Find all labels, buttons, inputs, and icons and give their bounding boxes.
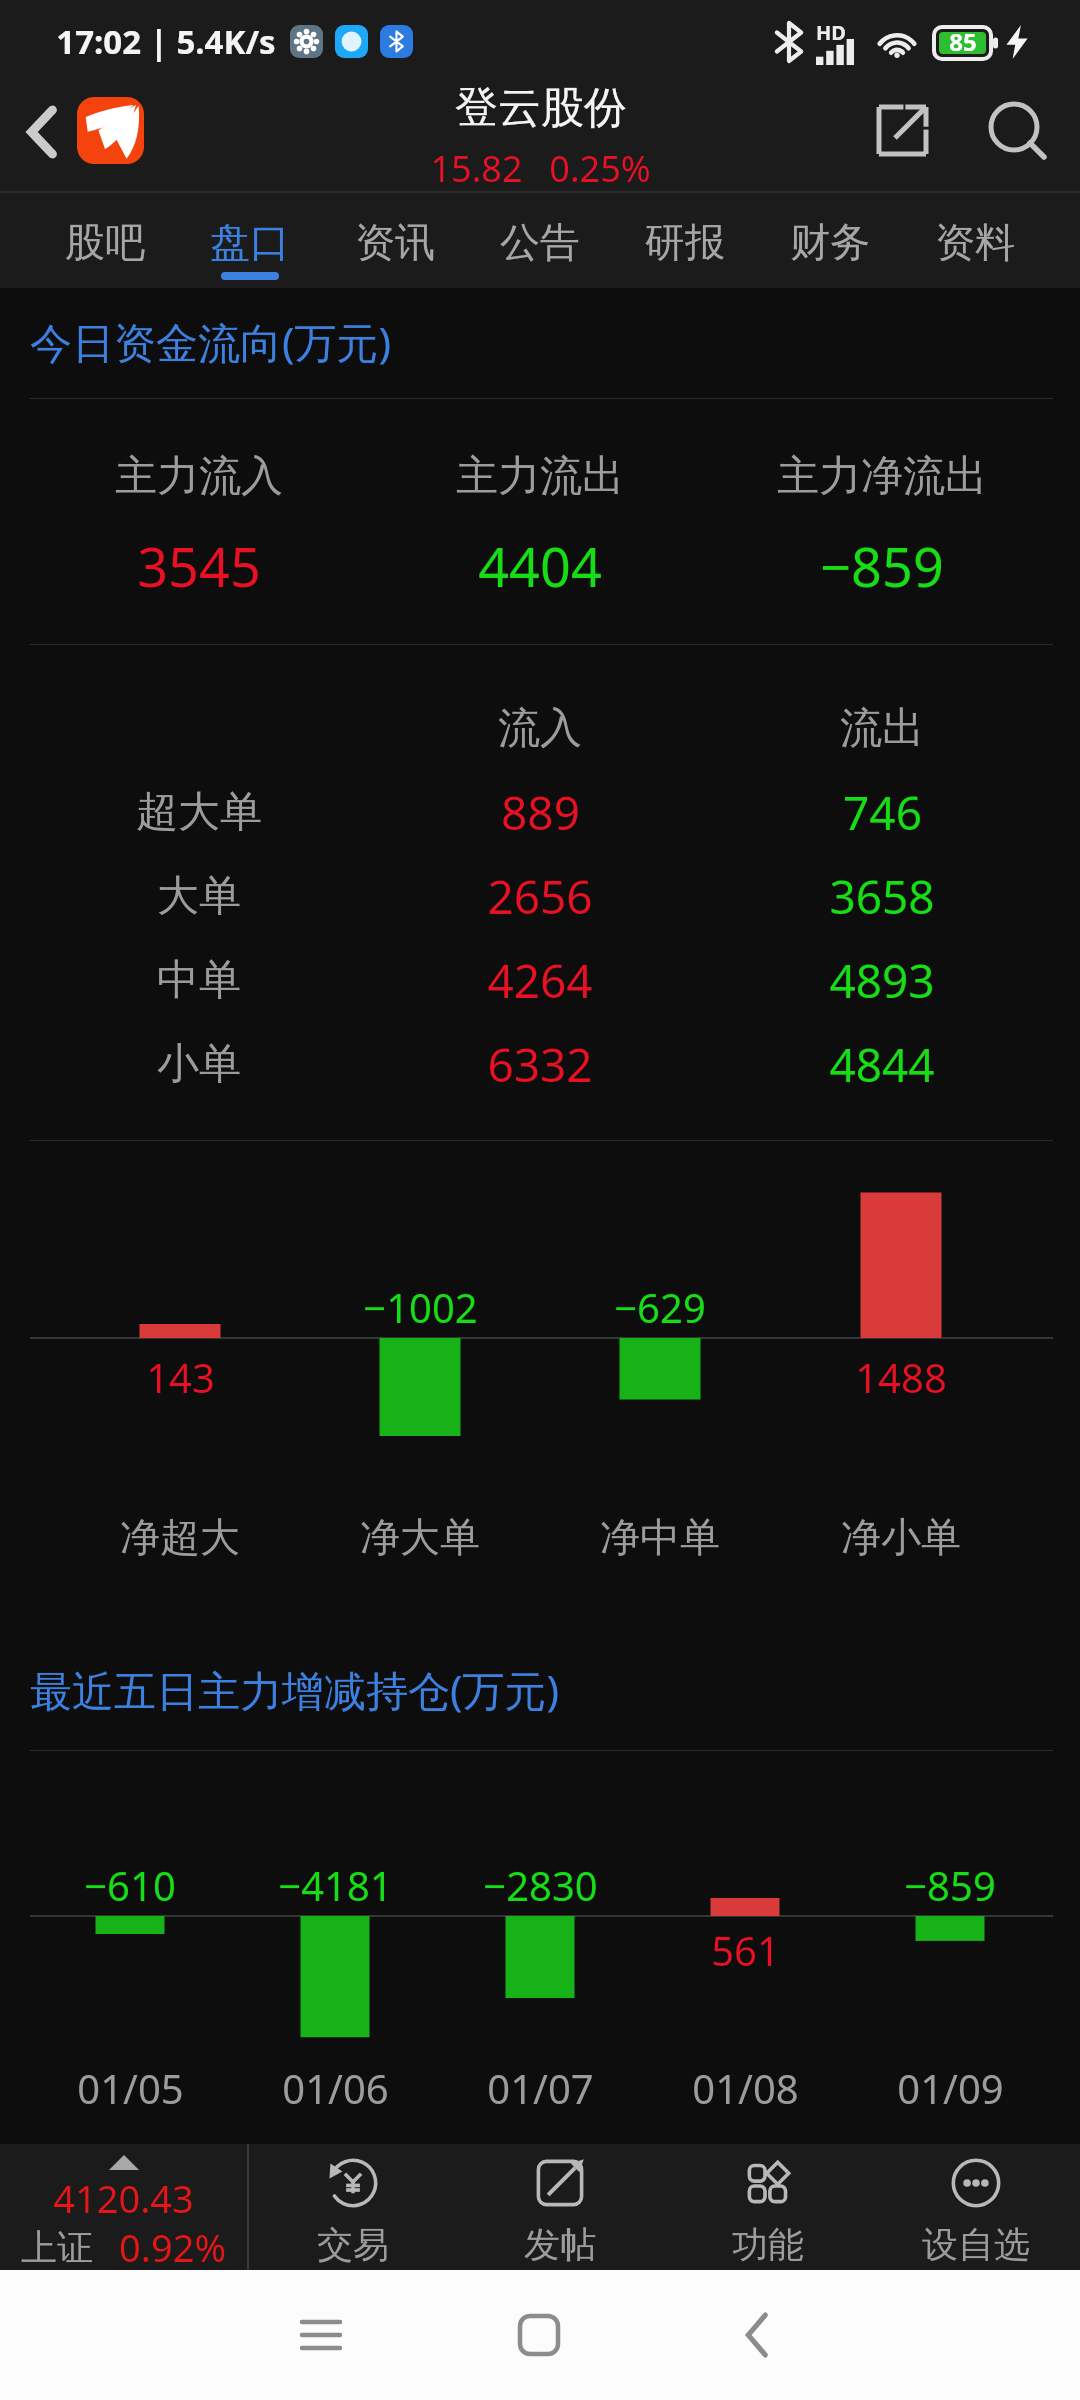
staticText: 17:02 | 5.4K/s (56, 19, 276, 64)
staticText: 流出 (840, 702, 924, 755)
staticText: 财务 (790, 217, 870, 267)
staticText: 主力流出 (456, 450, 624, 503)
staticText: 上证 (21, 2225, 93, 2270)
staticText: −859 (820, 529, 944, 603)
button[interactable]: Home (501, 2297, 577, 2373)
button[interactable]: 4120.43 (0, 2144, 247, 2270)
staticText: 3658 (829, 865, 935, 928)
staticText: 盘口 (210, 217, 290, 267)
staticText: 0.92% (119, 2221, 226, 2273)
staticText: 净中单 (600, 1512, 720, 1562)
staticText: 01/08 (692, 2061, 799, 2115)
staticText: −4181 (278, 1858, 393, 1912)
staticText: 流入 (498, 702, 582, 755)
staticText: 资讯 (355, 217, 435, 267)
staticText: 设自选 (922, 2222, 1030, 2267)
staticText: 2656 (487, 865, 593, 928)
button[interactable]: 财务 (757, 193, 902, 288)
staticText: 净超大 (120, 1512, 240, 1562)
button[interactable]: Back (0, 83, 77, 193)
staticText: 6332 (487, 1033, 593, 1096)
staticText: 01/06 (282, 2061, 389, 2115)
button[interactable]: 公告 (467, 193, 612, 288)
staticText: 746 (843, 781, 922, 844)
staticText: −859 (904, 1858, 996, 1912)
button[interactable]: Back (719, 2297, 795, 2373)
button[interactable]: 功能 (664, 2144, 872, 2270)
staticText: 主力净流出 (777, 450, 987, 503)
staticText: 交易 (317, 2222, 389, 2267)
staticText: 中单 (157, 954, 241, 1007)
staticText: 0.25% (549, 144, 651, 191)
staticText: 561 (711, 1923, 780, 1977)
staticText: 01/09 (897, 2061, 1004, 2115)
button[interactable]: App home (77, 97, 144, 164)
button[interactable]: Share (850, 83, 954, 193)
staticText: 4844 (829, 1033, 935, 1096)
staticText: 小单 (157, 1038, 241, 1091)
staticText: 股吧 (65, 217, 145, 267)
staticText: 最近五日主力增减持仓(万元) (30, 1661, 560, 1718)
staticText: 公告 (500, 217, 580, 267)
staticText: 01/07 (487, 2061, 594, 2115)
button[interactable]: 交易 (249, 2144, 456, 2270)
staticText: 净大单 (360, 1512, 480, 1562)
button[interactable]: 发帖 (456, 2144, 664, 2270)
staticText: 15.82 (430, 144, 523, 191)
staticText: HD (816, 19, 846, 46)
staticText: 净小单 (841, 1512, 961, 1562)
staticText: 3545 (137, 529, 261, 603)
button[interactable]: 盘口 (177, 193, 322, 288)
staticText: 研报 (645, 217, 725, 267)
staticText: −610 (84, 1858, 176, 1912)
staticText: 85 (949, 25, 977, 58)
staticText: 资料 (935, 217, 1015, 267)
staticText: 4264 (487, 949, 593, 1012)
staticText: 功能 (732, 2222, 804, 2267)
staticText: 143 (146, 1350, 215, 1404)
button[interactable]: 资讯 (322, 193, 467, 288)
button[interactable]: 设自选 (872, 2144, 1080, 2270)
staticText: −2830 (483, 1858, 598, 1912)
staticText: 主力流入 (115, 450, 283, 503)
staticText: 01/05 (77, 2061, 184, 2115)
staticText: −1002 (363, 1280, 478, 1334)
button[interactable]: 资料 (902, 193, 1047, 288)
staticText: 登云股份 (455, 81, 627, 135)
staticText: 今日资金流向(万元) (30, 313, 392, 370)
button[interactable]: 研报 (612, 193, 757, 288)
staticText: 发帖 (524, 2222, 596, 2267)
staticText: 超大单 (136, 786, 262, 839)
button[interactable]: Recent apps (283, 2297, 359, 2373)
staticText: −629 (614, 1280, 706, 1334)
staticText: 1488 (855, 1350, 947, 1404)
staticText: 4404 (478, 529, 602, 603)
button[interactable]: Search (965, 83, 1080, 193)
staticText: 4893 (829, 949, 935, 1012)
staticText: 4120.43 (53, 2172, 194, 2224)
button[interactable]: 股吧 (32, 193, 177, 288)
staticText: 大单 (157, 870, 241, 923)
staticText: 889 (501, 781, 580, 844)
